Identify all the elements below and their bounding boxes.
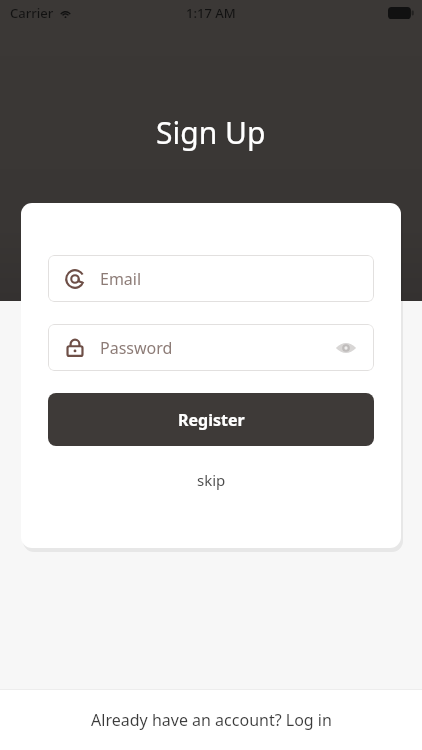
staticText: 1:17 AM	[186, 4, 236, 22]
button[interactable]: Show password	[334, 336, 358, 360]
staticText: Password	[100, 337, 173, 359]
staticText: Carrier	[10, 4, 54, 22]
button[interactable]: Register	[48, 393, 374, 446]
staticText: Email	[100, 268, 142, 290]
staticText: skip	[197, 470, 226, 490]
staticText: Register	[178, 409, 245, 431]
button[interactable]: Password	[48, 324, 374, 371]
button[interactable]: skip	[48, 464, 374, 496]
staticText: Sign Up	[156, 112, 266, 153]
button[interactable]: Already have an account? Log in	[0, 690, 422, 750]
button[interactable]: Email	[48, 255, 374, 302]
staticText: Already have an account? Log in	[91, 709, 332, 731]
